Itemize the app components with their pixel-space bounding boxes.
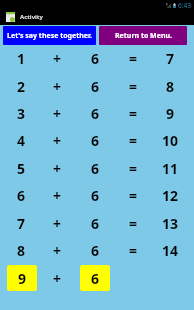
staticText: + [53, 77, 62, 96]
staticText: 1 [17, 49, 26, 68]
button[interactable]: Let's say these together. [3, 26, 96, 45]
staticText: + [53, 104, 62, 123]
staticText: 11 [162, 159, 179, 178]
staticText: 2 [17, 77, 26, 96]
staticText: 10 [162, 131, 179, 150]
staticText: 6 [91, 131, 100, 150]
staticText: 4 [17, 131, 26, 150]
staticText: 13 [162, 214, 179, 233]
other: Signal strength [166, 3, 171, 8]
staticText: 5 [17, 159, 26, 178]
staticText: + [53, 49, 62, 68]
staticText: 6 [91, 241, 100, 260]
staticText: 6 [91, 186, 100, 205]
staticText: 8 [166, 77, 175, 96]
staticText: 14 [162, 241, 179, 260]
staticText: = [129, 77, 138, 96]
staticText: 6:43 [178, 1, 191, 10]
staticText: 9 [166, 104, 175, 123]
staticText: 8 [17, 241, 26, 260]
staticText: = [129, 241, 138, 260]
button[interactable]: 6 [80, 265, 110, 291]
staticText: 6 [91, 159, 100, 178]
staticText: = [129, 49, 138, 68]
button[interactable]: 9 [7, 265, 37, 291]
staticText: 6 [91, 269, 100, 288]
staticText: = [129, 214, 138, 233]
staticText: Let's say these together. [7, 31, 92, 41]
staticText: = [129, 186, 138, 205]
staticText: 7 [17, 214, 26, 233]
staticText: = [129, 131, 138, 150]
staticText: 9 [18, 269, 27, 288]
other: Battery [173, 3, 176, 8]
staticText: + [53, 159, 62, 178]
staticText: + [53, 214, 62, 233]
staticText: 6 [91, 77, 100, 96]
staticText: 3 [17, 104, 26, 123]
staticText: + [53, 241, 62, 260]
staticText: = [129, 159, 138, 178]
staticText: 6 [91, 104, 100, 123]
staticText: + [53, 186, 62, 205]
staticText: Return to Menu. [115, 31, 172, 41]
staticText: 6 [17, 186, 26, 205]
staticText: 12 [162, 186, 179, 205]
staticText: 7 [166, 49, 175, 68]
staticText: 6 [91, 214, 100, 233]
staticText: = [129, 104, 138, 123]
staticText: Activity [20, 13, 43, 21]
staticText: 6 [91, 49, 100, 68]
button[interactable]: Return to Menu. [99, 26, 187, 45]
staticText: + [53, 269, 62, 288]
staticText: + [53, 131, 62, 150]
